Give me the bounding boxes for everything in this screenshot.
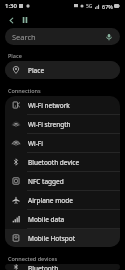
button[interactable]: Place <box>5 61 120 79</box>
button[interactable]: Search <box>5 28 120 45</box>
staticText: Wi-Fi network <box>28 101 70 110</box>
button[interactable]: Bluetooth device <box>5 153 120 171</box>
staticText: 1:30 <box>5 2 17 10</box>
staticText: Mobile data <box>28 215 65 224</box>
button[interactable]: Wi-Fi network <box>5 96 120 114</box>
staticText: Search <box>12 32 36 42</box>
button[interactable]: NFC tagged <box>5 172 120 190</box>
button[interactable]: Mobile Hotspot <box>5 229 120 247</box>
staticText: 5G <box>86 3 93 10</box>
staticText: Wi-Fi <box>28 139 43 148</box>
button[interactable]: Back <box>5 14 17 26</box>
staticText: Wi-Fi strength <box>28 120 71 129</box>
button[interactable]: Wi-Fi <box>5 134 120 152</box>
staticText: Bluetooth device <box>28 158 80 167</box>
staticText: 67% <box>102 3 113 10</box>
other: Voice search <box>105 33 113 41</box>
staticText: Bluetooth <box>28 264 59 270</box>
button[interactable]: Pause <box>19 14 31 26</box>
staticText: Airplane mode <box>28 196 73 205</box>
button[interactable]: Mobile data <box>5 210 120 228</box>
staticText: Place <box>28 66 45 75</box>
staticText: Mobile Hotspot <box>28 234 76 243</box>
button[interactable]: Bluetooth <box>5 264 120 270</box>
staticText: Connected devices <box>8 255 58 262</box>
staticText: Connections <box>8 87 41 94</box>
button[interactable]: Airplane mode <box>5 191 120 209</box>
button[interactable]: Wi-Fi strength <box>5 115 120 133</box>
staticText: NFC tagged <box>28 177 64 186</box>
staticText: Place <box>8 52 22 59</box>
